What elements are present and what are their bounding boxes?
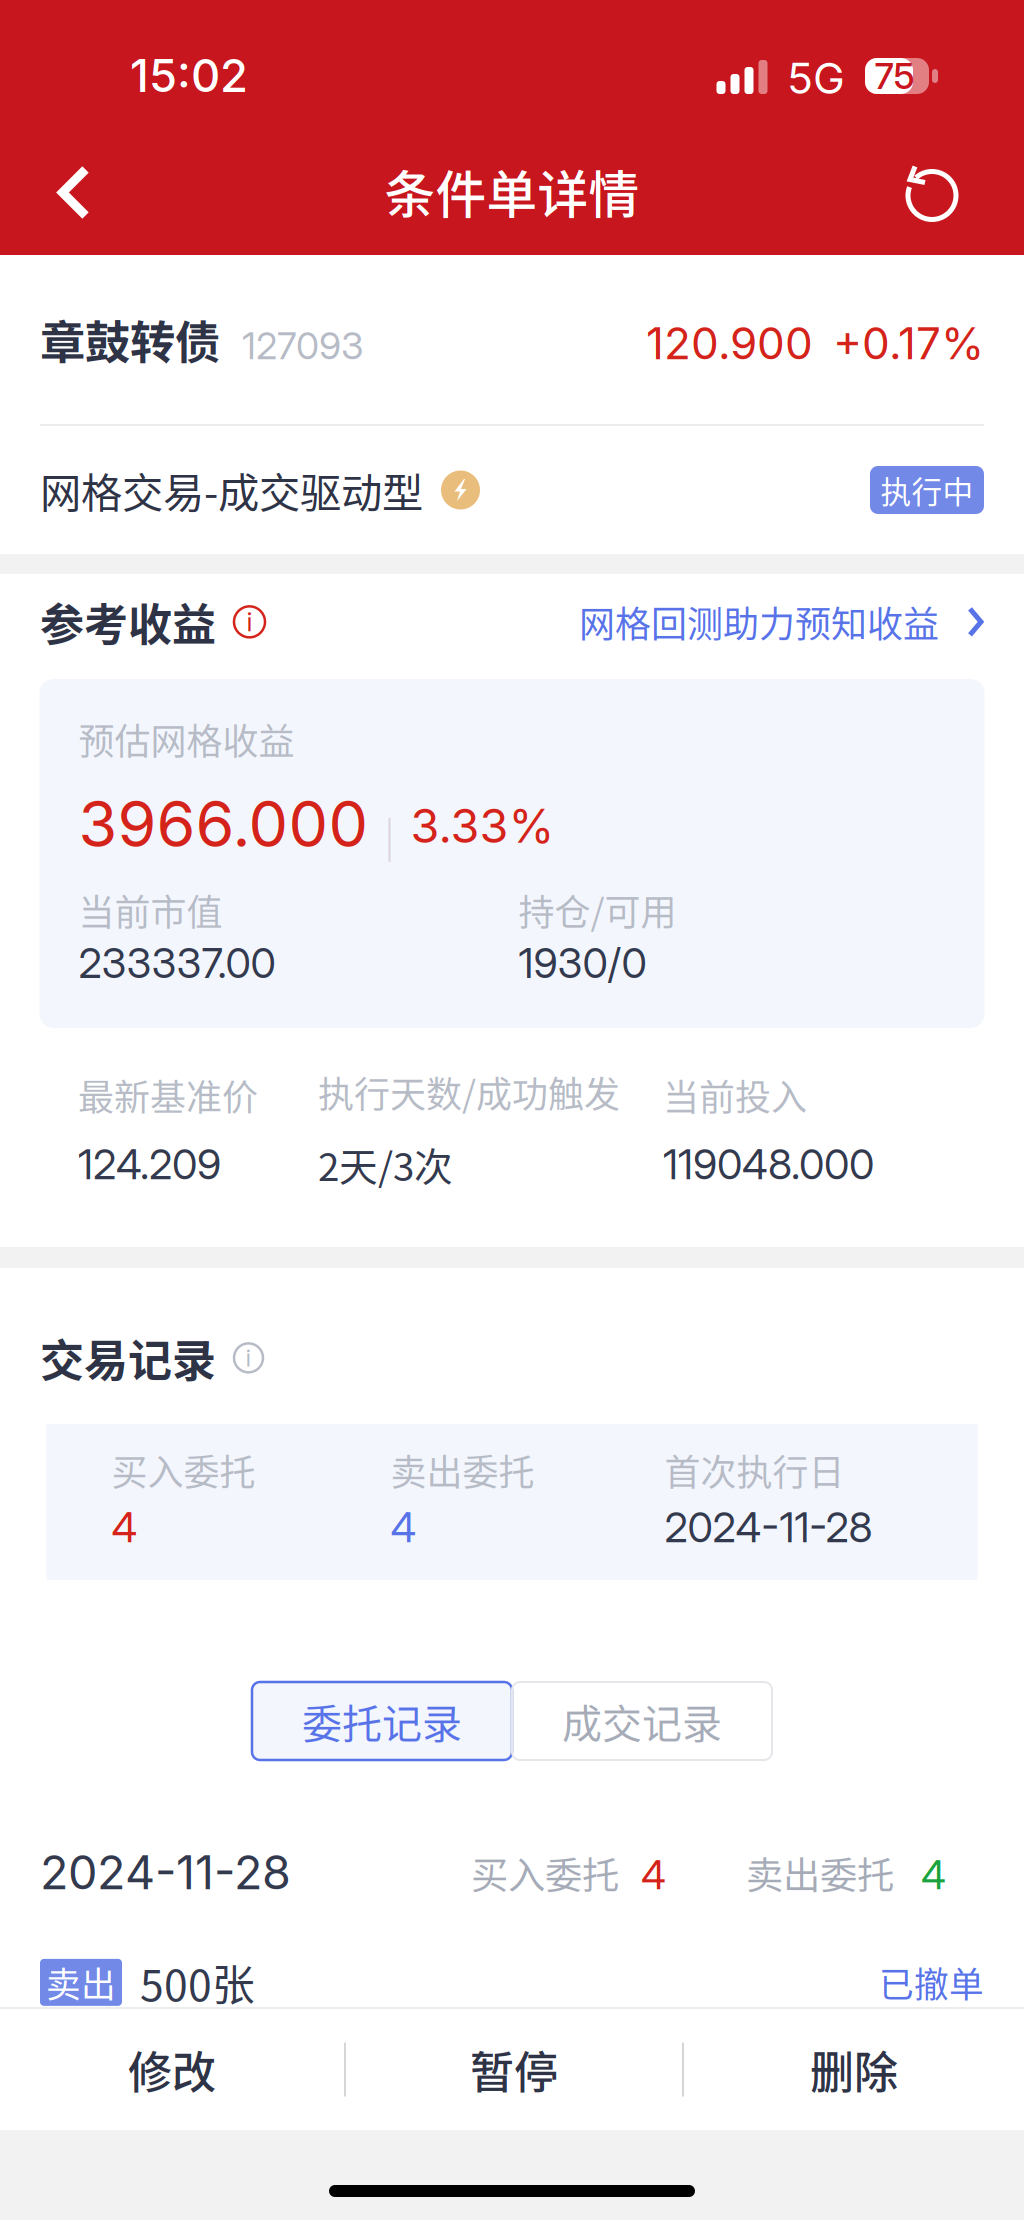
staticText: 修改 — [128, 2038, 216, 2101]
staticText: 2024-11-28 — [664, 1502, 872, 1552]
staticText: 已撤单 — [879, 1957, 984, 2007]
staticText: 暂停 — [470, 2038, 558, 2101]
staticText: i — [245, 1343, 251, 1372]
staticText: 删除 — [810, 2038, 898, 2101]
staticText: 卖出委托 — [390, 1444, 534, 1496]
staticText: 5G — [787, 52, 845, 104]
staticText: i — [246, 606, 252, 637]
staticText: 买入委托 — [111, 1444, 255, 1496]
button[interactable]: 刷新 — [874, 136, 986, 248]
staticText: 1930/0 — [518, 938, 646, 988]
staticText: 2天/3次 — [318, 1136, 453, 1192]
staticText: 4 — [111, 1502, 137, 1552]
staticText: 网格交易-成交驱动型 — [40, 460, 423, 520]
staticText: 当前市值 — [78, 884, 222, 936]
staticText: 3.33% — [410, 797, 554, 854]
staticText: 委托记录 — [302, 1692, 462, 1750]
staticText: 2024-11-28 — [40, 1844, 291, 1900]
staticText: 持仓/可用 — [518, 884, 676, 936]
staticText: 条件单详情 — [384, 155, 639, 228]
staticText: 参考收益 — [40, 590, 216, 654]
staticText: 网格回测助力预知收益 — [579, 596, 939, 648]
staticText: 章鼓转债 — [40, 307, 220, 372]
staticText: 卖出 — [46, 1957, 116, 2007]
button[interactable]: 删除 — [684, 2009, 1024, 2130]
button[interactable]: 成交记录 — [512, 1682, 772, 1760]
staticText: 4 — [921, 1850, 946, 1899]
button[interactable]: 返回 — [18, 136, 130, 248]
staticText: 3966.000 — [78, 786, 368, 862]
staticText: 4 — [641, 1850, 666, 1899]
staticText: 233337.00 — [78, 938, 275, 988]
staticText: 预估网格收益 — [78, 713, 294, 765]
staticText: 执行中 — [880, 468, 973, 512]
staticText: 127093 — [242, 323, 364, 368]
button[interactable]: 委托记录 — [252, 1682, 512, 1760]
button[interactable]: 暂停 — [346, 2009, 682, 2130]
staticText: 成交记录 — [562, 1692, 722, 1750]
staticText: 4 — [390, 1502, 416, 1552]
staticText: 执行天数/成功触发 — [318, 1066, 620, 1118]
staticText: 交易记录 — [40, 1326, 216, 1390]
staticText: 当前投入 — [663, 1069, 807, 1121]
staticText: 119048.000 — [663, 1139, 874, 1189]
staticText: 124.209 — [78, 1139, 221, 1189]
button[interactable]: 修改 — [0, 2009, 344, 2130]
staticText: 首次执行日 — [664, 1444, 844, 1496]
staticText: 卖出委托 — [746, 1846, 894, 1900]
button[interactable]: 网格回测助力预知收益 — [579, 596, 984, 648]
staticText: 买入委托 — [471, 1846, 619, 1900]
staticText: 500张 — [140, 1951, 255, 2013]
staticText: +0.17% — [833, 317, 984, 370]
staticText: 15:02 — [130, 48, 248, 103]
staticText: 最新基准价 — [78, 1069, 258, 1121]
staticText: 120.900 — [646, 317, 813, 370]
staticText: 75 — [874, 54, 914, 98]
